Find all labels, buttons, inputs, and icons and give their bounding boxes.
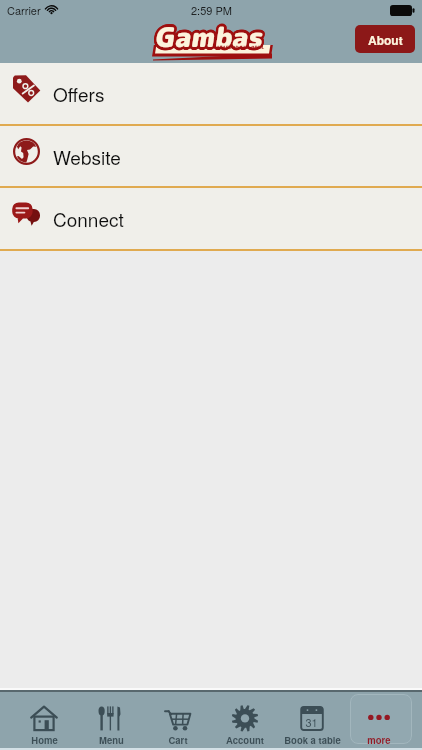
staticText: 2:59 PM: [191, 2, 232, 18]
staticText: About: [368, 31, 403, 48]
staticText: Cart: [168, 733, 188, 747]
staticText: more: [367, 733, 391, 747]
button[interactable]: Website: [0, 126, 422, 186]
staticText: Carrier: [7, 2, 41, 18]
button[interactable]: About: [355, 25, 415, 53]
staticText: Menu: [99, 733, 124, 747]
staticText: Connect: [53, 205, 124, 232]
button[interactable]: Cart: [145, 692, 211, 748]
staticText: Account: [226, 733, 264, 747]
staticText: Website: [53, 143, 121, 170]
staticText: Offers: [53, 80, 105, 107]
button[interactable]: Connect: [0, 188, 422, 249]
button[interactable]: Account: [212, 692, 278, 748]
button[interactable]: Offers: [0, 63, 422, 124]
button[interactable]: Home: [11, 692, 77, 748]
staticText: Home: [31, 733, 58, 747]
button[interactable]: more: [346, 692, 412, 748]
staticText: Book a table: [284, 733, 341, 747]
button[interactable]: Book a table: [279, 692, 345, 748]
button[interactable]: Menu: [78, 692, 144, 748]
